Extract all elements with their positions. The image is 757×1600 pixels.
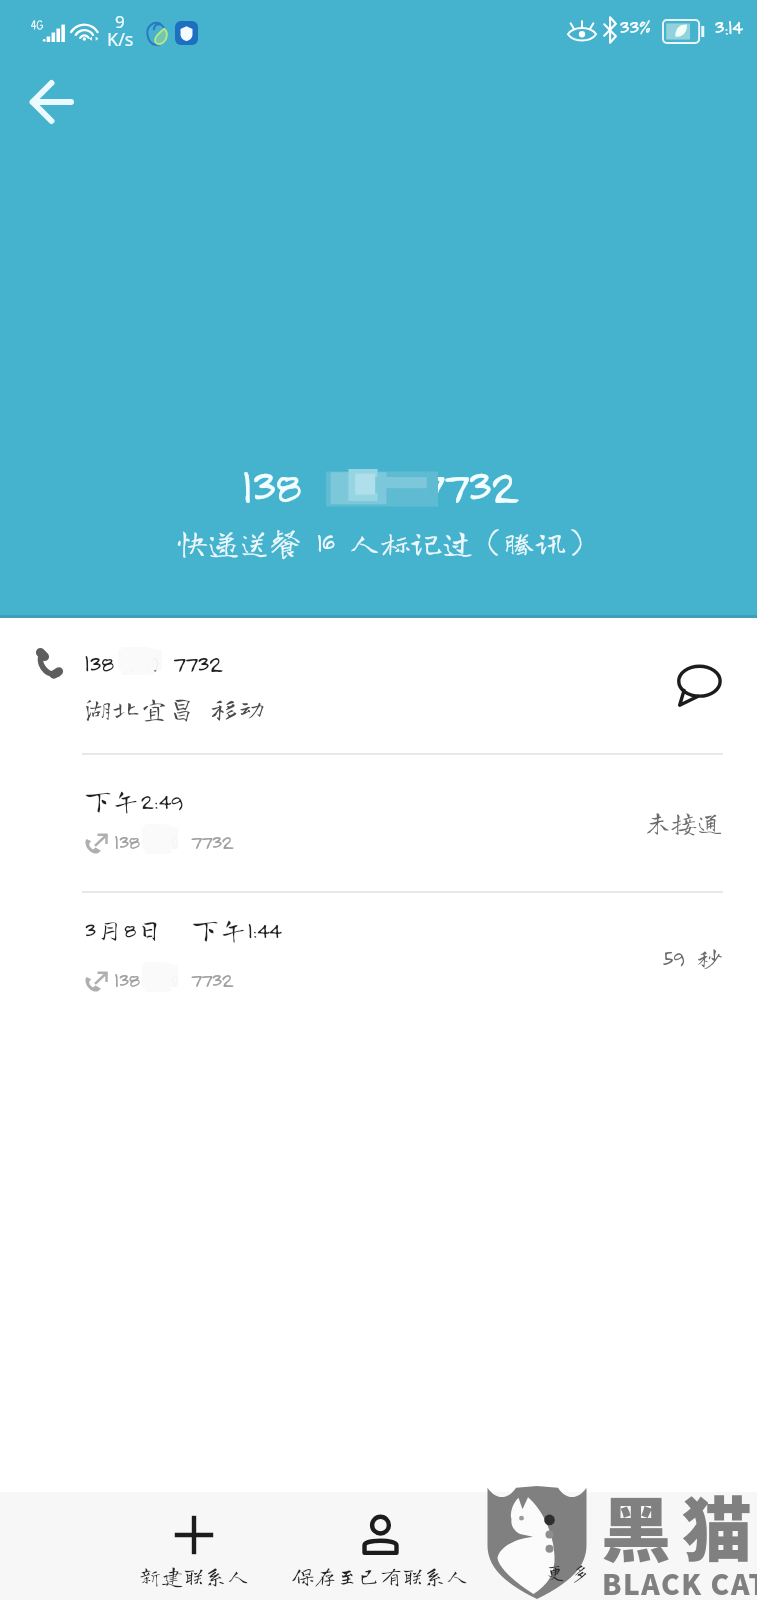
- staticText: 黑猫: [601, 1475, 757, 1576]
- staticText: 33%: [619, 15, 650, 39]
- button[interactable]: 下午2:49: [0, 755, 757, 891]
- button[interactable]: 新建联系人: [96, 1492, 292, 1600]
- staticText: 59 秒: [662, 944, 723, 970]
- staticText: 快递送餐 16 人标记过（腾讯）: [177, 527, 597, 558]
- staticText: 3:14: [714, 15, 742, 39]
- button[interactable]: 138 0000 7732: [0, 618, 757, 753]
- button[interactable]: 保存至已有联系人: [282, 1492, 478, 1600]
- staticText: 138 0000 7732: [84, 648, 222, 677]
- staticText: 138 0000 7732: [114, 967, 233, 992]
- staticText: 湖北宜昌 移动: [84, 694, 267, 722]
- button[interactable]: Send message: [663, 649, 735, 721]
- staticText: K/s: [107, 27, 134, 52]
- staticText: 3月8日 下午1:44: [84, 915, 281, 943]
- staticText: 138 0000 7732: [114, 829, 233, 854]
- button[interactable]: Back: [14, 64, 90, 140]
- staticText: BLACK CAT: [602, 1563, 757, 1600]
- button[interactable]: [474, 1492, 654, 1600]
- staticText: 新建联系人: [139, 1565, 250, 1587]
- staticText: 9: [115, 10, 125, 33]
- staticText: 未接通: [645, 809, 724, 835]
- staticText: 更多: [546, 1562, 594, 1582]
- staticText: 138 0000 7732: [241, 456, 517, 514]
- button[interactable]: 3月8日 下午1:44: [0, 893, 757, 1029]
- staticText: 保存至已有联系人: [292, 1565, 469, 1587]
- staticText: 下午2:49: [84, 786, 183, 814]
